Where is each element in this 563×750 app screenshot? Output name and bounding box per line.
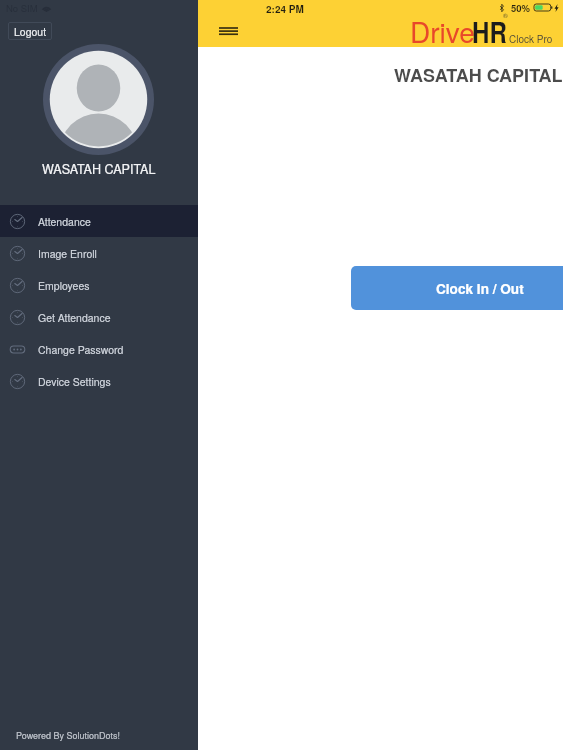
staticText: ® — [503, 11, 508, 20]
staticText: Attendance — [38, 214, 91, 229]
button[interactable]: Attendance — [0, 205, 198, 237]
staticText: 2:24 PM — [266, 2, 304, 16]
staticText: Image Enroll — [38, 246, 97, 261]
staticText: Change Password — [38, 342, 124, 357]
button[interactable]: Image Enroll — [0, 237, 198, 269]
button[interactable]: Get Attendance — [0, 301, 198, 333]
button[interactable]: Logout — [8, 22, 52, 40]
button[interactable]: Change Password — [0, 333, 198, 365]
staticText: WASATAH CAPITAL — [42, 160, 156, 178]
button[interactable]: Device Settings — [0, 365, 198, 397]
staticText: Device Settings — [38, 374, 111, 389]
staticText: Get Attendance — [38, 310, 111, 325]
staticText: Powered By SolutionDots! — [16, 729, 120, 742]
staticText: Clock Pro — [509, 32, 553, 46]
staticText: Clock In / Out — [436, 279, 524, 298]
staticText: HR — [472, 11, 507, 51]
staticText: Logout — [14, 24, 47, 39]
staticText: Drive — [410, 11, 475, 51]
staticText: 50% — [511, 1, 531, 15]
staticText: WASATAH CAPITAL — [394, 62, 563, 88]
button[interactable]: Open navigation menu — [212, 15, 244, 47]
button[interactable]: Employees — [0, 269, 198, 301]
staticText: Employees — [38, 278, 90, 293]
button[interactable]: Clock In / Out — [351, 266, 563, 310]
